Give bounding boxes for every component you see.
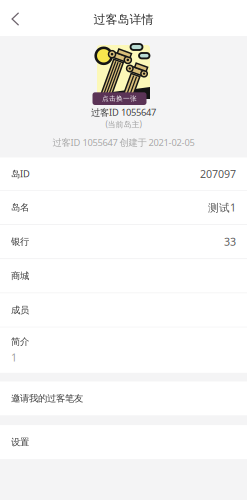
staticText: 邀请我的过客笔友 xyxy=(11,393,83,404)
button[interactable]: 岛名 xyxy=(0,191,247,225)
staticText: 点击换一张 xyxy=(102,95,137,103)
staticText: 成员 xyxy=(11,304,29,316)
staticText: 银行 xyxy=(11,236,29,247)
button[interactable]: 银行 xyxy=(0,225,247,259)
staticText: 岛名 xyxy=(11,202,29,213)
button[interactable]: Back xyxy=(0,0,31,36)
staticText: 33 xyxy=(224,235,236,249)
staticText: 过客ID 1055647 创建于 2021-02-05 xyxy=(52,136,194,148)
button[interactable]: 岛ID xyxy=(0,157,247,191)
button[interactable]: 简介 xyxy=(0,327,247,373)
staticText: 商城 xyxy=(11,270,29,282)
button[interactable]: 点击换一张 xyxy=(92,92,146,105)
staticText: 岛ID xyxy=(11,168,30,180)
staticText: 过客岛详情 xyxy=(93,12,153,27)
staticText: (当前岛主) xyxy=(105,119,141,129)
staticText: 设置 xyxy=(11,436,29,448)
button[interactable]: 商城 xyxy=(0,259,247,293)
button[interactable]: 设置 xyxy=(0,425,247,459)
staticText: 过客ID 1055647 xyxy=(91,106,156,118)
staticText: 1 xyxy=(11,350,17,364)
staticText: 测试1 xyxy=(208,200,236,215)
button[interactable]: 邀请我的过客笔友 xyxy=(0,381,247,415)
button[interactable]: 成员 xyxy=(0,293,247,327)
staticText: 207097 xyxy=(200,167,236,181)
staticText: 简介 xyxy=(11,336,29,347)
